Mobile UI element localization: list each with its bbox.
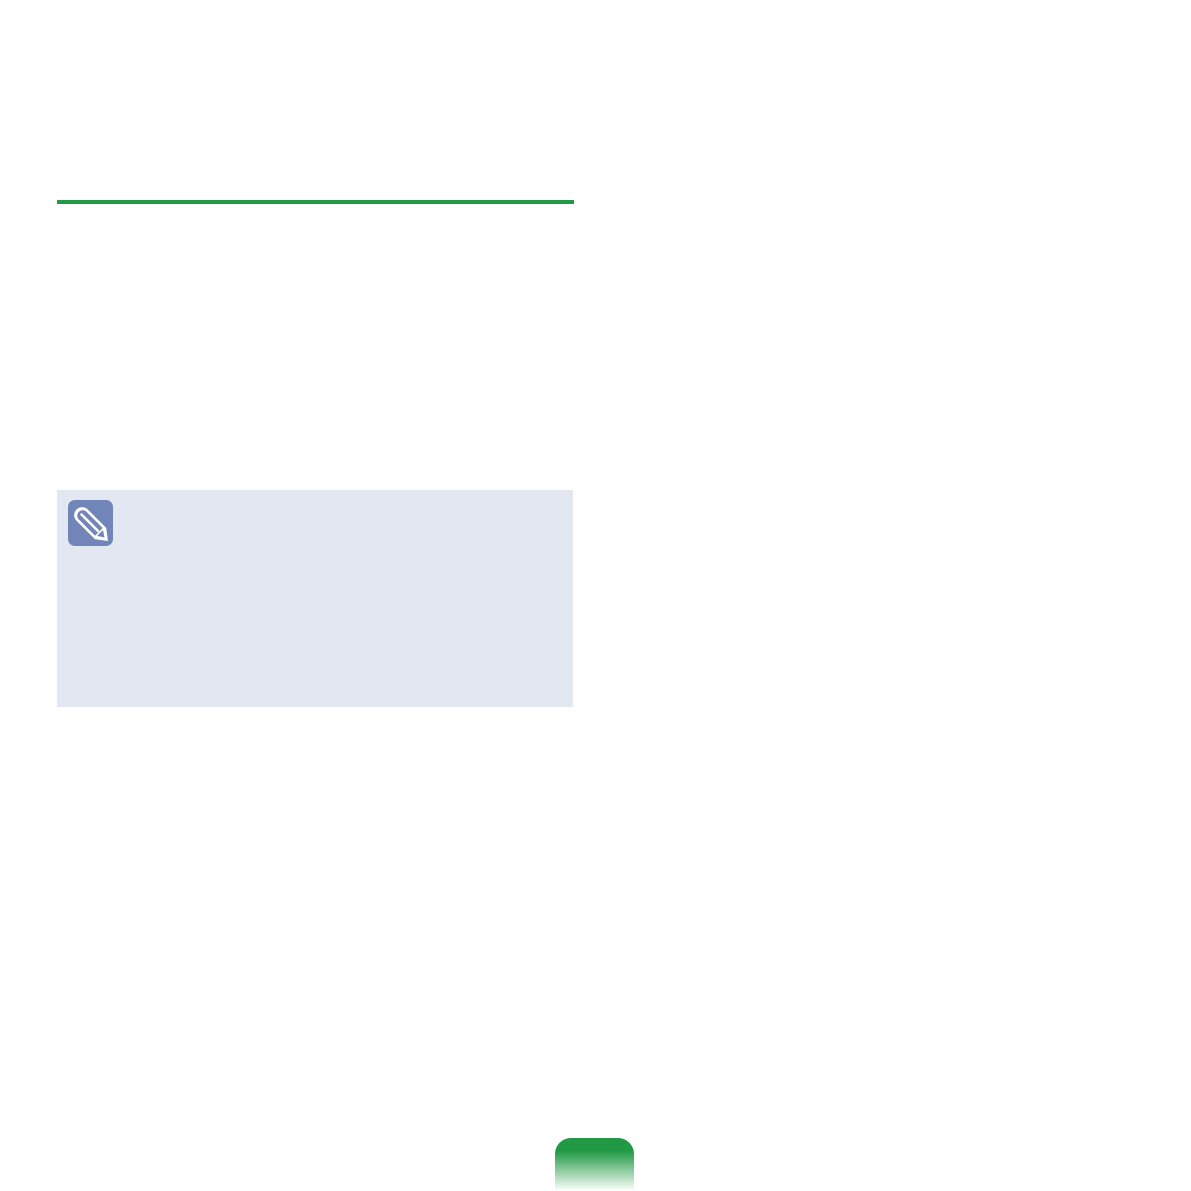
button[interactable]: Edit note [68,500,113,546]
